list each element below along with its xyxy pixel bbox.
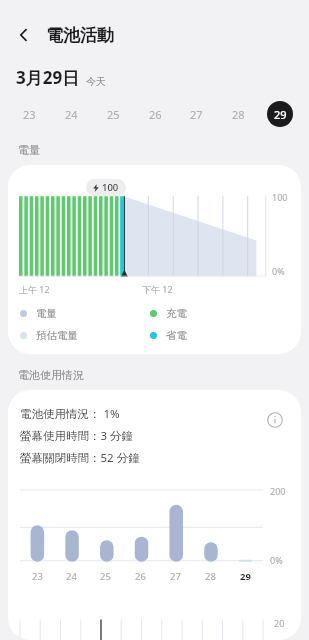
button[interactable]: Information — [261, 406, 289, 434]
button[interactable]: 27 — [183, 101, 209, 127]
button[interactable]: 28 — [225, 101, 251, 127]
staticText: 24 — [65, 107, 78, 122]
staticText: 23 — [32, 570, 43, 583]
button[interactable]: Back — [8, 19, 40, 51]
button[interactable]: 25 — [100, 101, 126, 127]
staticText: 電池使用情況： 1% — [20, 406, 120, 422]
staticText: 25 — [100, 570, 111, 583]
button[interactable]: 24 — [58, 101, 84, 127]
staticText: 29 — [274, 107, 287, 122]
staticText: 25 — [107, 107, 120, 122]
staticText: 200 — [270, 485, 286, 497]
button[interactable]: 充電 — [150, 307, 187, 320]
button[interactable]: 26 — [142, 101, 168, 127]
staticText: 省電 — [166, 329, 187, 342]
staticText: 電池使用情況 — [18, 368, 84, 382]
staticText: 29 — [240, 570, 251, 583]
button[interactable]: 省電 — [150, 329, 187, 342]
staticText: 100 — [272, 191, 288, 203]
staticText: 27 — [170, 570, 181, 583]
staticText: 28 — [232, 107, 245, 122]
staticText: 下午 12 — [142, 283, 173, 295]
staticText: 27 — [190, 107, 203, 122]
staticText: 螢幕使用時間：3 分鐘 — [20, 428, 134, 444]
button[interactable]: 100 — [8, 165, 301, 354]
staticText: 26 — [149, 107, 162, 122]
staticText: 20 — [274, 617, 285, 629]
staticText: 電量 — [18, 143, 40, 157]
staticText: 螢幕關閉時間：52 分鐘 — [20, 450, 140, 466]
staticText: 充電 — [166, 307, 187, 320]
staticText: 3月29日 — [16, 66, 80, 89]
staticText: 預估電量 — [36, 329, 78, 342]
staticText: 100 — [102, 181, 119, 194]
button[interactable]: 29 — [267, 101, 293, 127]
button[interactable]: 23 — [16, 101, 42, 127]
staticText: 23 — [23, 107, 36, 122]
button[interactable]: 預估電量 — [20, 329, 150, 342]
staticText: 電量 — [36, 307, 57, 320]
staticText: 26 — [135, 570, 146, 583]
staticText: 28 — [205, 570, 216, 583]
button[interactable]: 電量 — [20, 307, 150, 320]
staticText: 電池活動 — [46, 25, 114, 46]
staticText: 0% — [270, 554, 283, 566]
staticText: 0% — [272, 265, 285, 277]
staticText: 上午 12 — [19, 283, 50, 295]
staticText: 今天 — [86, 75, 106, 88]
staticText: 24 — [66, 570, 77, 583]
